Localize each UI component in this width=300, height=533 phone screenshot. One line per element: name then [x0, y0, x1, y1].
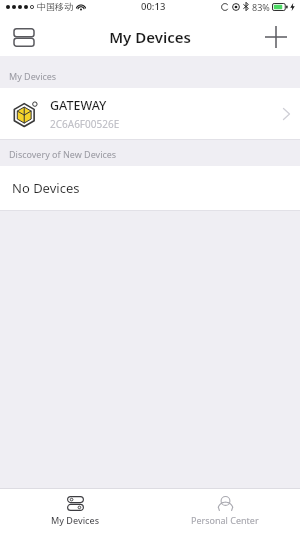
staticText: 83%	[252, 1, 270, 13]
staticText: Personal Center	[191, 514, 259, 526]
button[interactable]: GATEWAY	[0, 88, 300, 139]
staticText: 2C6A6F00526E	[50, 117, 120, 131]
staticText: My Devices	[9, 70, 57, 82]
button[interactable]: Menu	[6, 19, 42, 55]
staticText: 00:13	[141, 0, 166, 13]
button[interactable]: My Devices	[0, 489, 150, 533]
staticText: 中国移动	[37, 1, 73, 12]
staticText: GATEWAY	[50, 97, 107, 114]
staticText: No Devices	[12, 179, 80, 197]
button[interactable]: No Devices	[0, 166, 300, 210]
staticText: My Devices	[51, 514, 100, 526]
staticText: My Devices	[109, 27, 191, 47]
button[interactable]: Personal Center	[150, 489, 300, 533]
staticText: Discovery of New Devices	[9, 148, 117, 160]
button[interactable]: Add device	[258, 19, 294, 55]
